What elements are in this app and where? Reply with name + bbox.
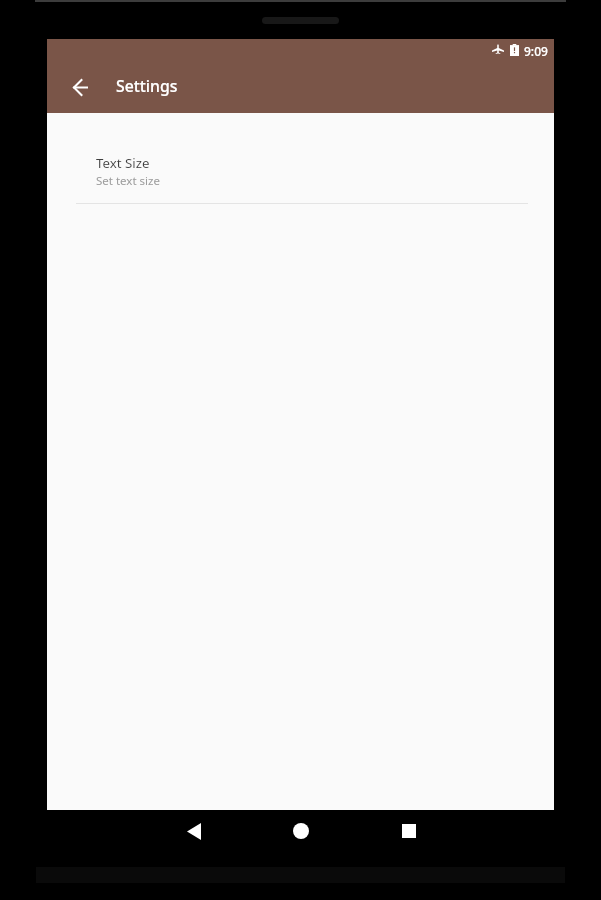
staticText: Text Size: [96, 154, 150, 172]
staticText: Settings: [116, 75, 178, 97]
button[interactable]: Navigate up: [56, 63, 104, 111]
button[interactable]: Text Size: [47, 113, 554, 243]
staticText: Set text size: [96, 173, 160, 189]
button[interactable]: Home: [288, 818, 314, 844]
staticText: 9:09: [524, 43, 548, 59]
button[interactable]: Back: [181, 818, 207, 844]
button[interactable]: Recent apps: [396, 818, 422, 844]
